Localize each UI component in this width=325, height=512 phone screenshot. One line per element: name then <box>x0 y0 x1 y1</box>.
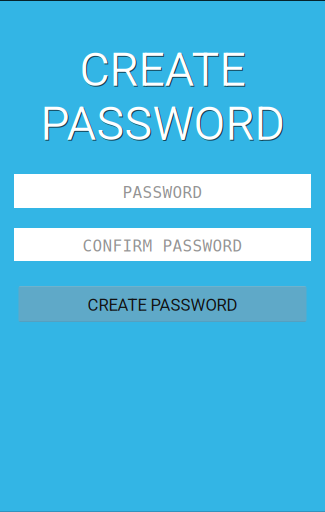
button[interactable]: PASSWORD <box>14 174 311 208</box>
staticText: CREATE <box>80 44 246 98</box>
staticText: CREATE <box>79 43 245 97</box>
staticText: CREATE PASSWORD <box>87 295 237 315</box>
staticText: PASSWORD <box>40 97 284 151</box>
button[interactable]: CONFIRM PASSWORD <box>14 228 311 261</box>
staticText: CONFIRM PASSWORD <box>82 237 242 255</box>
button[interactable]: CREATE PASSWORD <box>18 286 306 322</box>
staticText: PASSWORD <box>122 183 202 202</box>
staticText: PASSWORD <box>41 98 285 152</box>
